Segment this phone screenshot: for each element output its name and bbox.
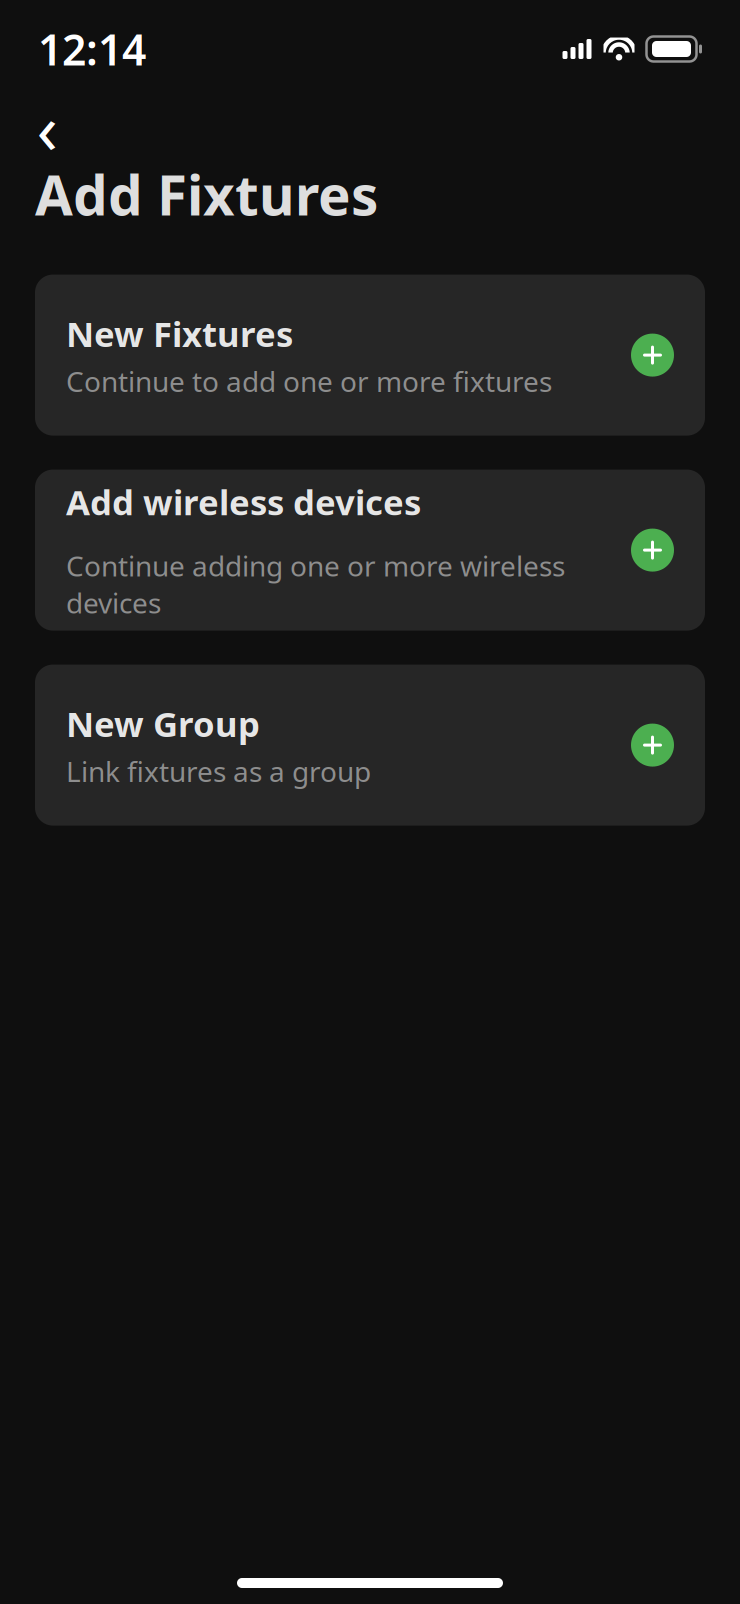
staticText: Continue adding one or more wireless dev… [66,547,565,621]
staticText: New Group [66,700,260,746]
staticText: Add wireless devices [66,479,421,525]
button[interactable]: New Group [35,665,705,826]
staticText: ‹ [36,81,57,173]
button[interactable]: Add wireless devices [35,470,705,631]
staticText: New Fixtures [66,310,293,356]
staticText: Add Fixtures [35,158,378,231]
button[interactable]: New Fixtures [35,275,705,436]
staticText: Link fixtures as a group [66,752,371,790]
button[interactable]: Back [20,100,74,154]
staticText: Continue to add one or more fixtures [66,362,552,400]
staticText: 12:14 [38,21,146,77]
